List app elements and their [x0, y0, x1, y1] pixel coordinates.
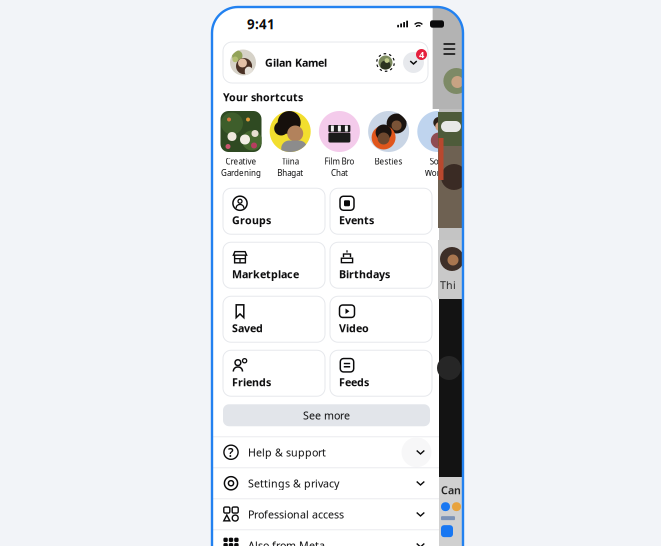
staticText: Saved — [232, 321, 263, 335]
button[interactable]: Saved — [223, 296, 325, 342]
staticText: Friends — [232, 375, 271, 389]
staticText: Groups — [232, 213, 271, 227]
staticText: Marketplace — [232, 267, 299, 281]
staticText: Som — [430, 156, 446, 167]
button[interactable]: Events — [330, 188, 432, 234]
button[interactable]: Besties — [367, 111, 410, 178]
button[interactable]: Video — [330, 296, 432, 342]
button[interactable]: Creative — [219, 111, 262, 178]
staticText: 9:41 — [247, 15, 275, 33]
button[interactable]: Feeds — [330, 350, 432, 396]
staticText: Tiina — [282, 156, 299, 167]
button[interactable]: Marketplace — [223, 242, 325, 288]
staticText: Film Bro — [324, 156, 354, 167]
staticText: Professional access — [248, 507, 344, 521]
staticText: See more — [303, 408, 350, 422]
button[interactable]: See more — [223, 404, 430, 426]
staticText: Can — [441, 483, 461, 497]
button[interactable]: Som — [416, 111, 459, 178]
staticText: Video — [339, 321, 369, 335]
staticText: Gardening — [221, 168, 261, 178]
staticText: Bhagat — [277, 168, 303, 178]
staticText: Feeds — [339, 375, 369, 389]
staticText: 4 — [419, 48, 424, 61]
staticText: Besties — [375, 156, 403, 167]
staticText: Thi — [440, 278, 456, 292]
button[interactable]: Settings & privacy — [212, 468, 439, 499]
button[interactable]: Friends — [223, 350, 325, 396]
staticText: Also from Meta — [248, 538, 325, 546]
button[interactable]: Professional access — [212, 499, 439, 530]
staticText: Settings & privacy — [248, 476, 339, 490]
staticText: Gilan Kamel — [265, 55, 327, 70]
button[interactable]: Groups — [223, 188, 325, 234]
button[interactable]: Tiina — [269, 111, 312, 178]
staticText: Birthdays — [339, 267, 390, 281]
staticText: Your shortcuts — [223, 90, 303, 104]
button[interactable]: Gilan Kamel — [223, 42, 428, 83]
button[interactable]: ? — [212, 437, 439, 468]
button[interactable]: Birthdays — [330, 242, 432, 288]
staticText: Help & support — [248, 445, 326, 459]
button[interactable]: Also from Meta — [212, 530, 439, 546]
staticText: Events — [339, 213, 374, 227]
staticText: Creative — [225, 156, 256, 167]
staticText: Wongs — [425, 168, 451, 178]
staticText: Chat — [331, 168, 348, 178]
button[interactable]: Film Bro — [318, 111, 361, 178]
staticText: ? — [228, 444, 234, 460]
